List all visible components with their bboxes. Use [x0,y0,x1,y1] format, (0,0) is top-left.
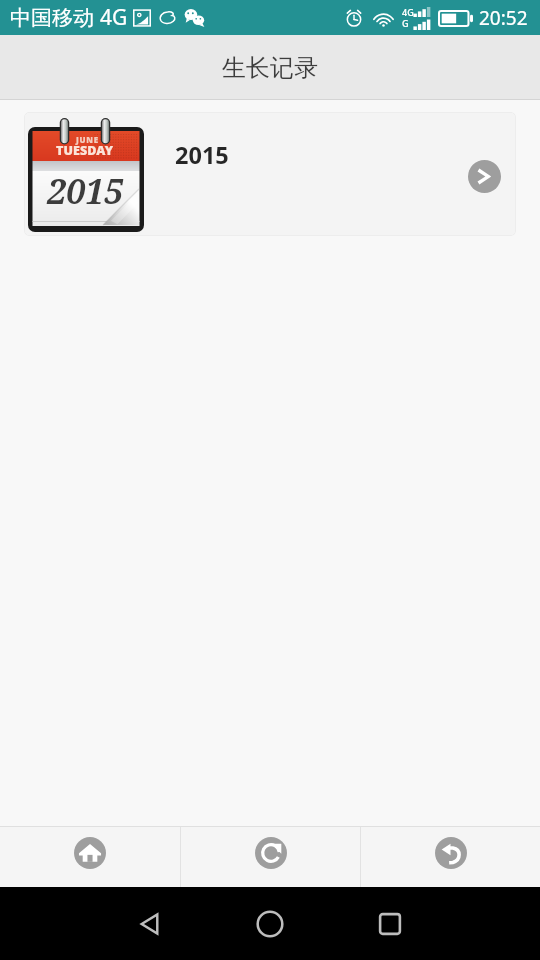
staticText: 中国移动 [10,5,94,31]
staticText: 2015 [175,139,229,171]
staticText: 4G [100,3,128,32]
button[interactable]: JUNE [24,112,516,236]
button[interactable]: Refresh [181,827,360,887]
button[interactable]: Back [361,827,540,887]
button[interactable]: Home [0,827,180,887]
staticText: 4G [402,6,414,18]
button[interactable]: Back [126,900,174,948]
button[interactable]: Home [246,900,294,948]
staticText: TUESDAY [56,142,114,159]
staticText: G [402,17,409,29]
staticText: 生长记录 [222,53,318,83]
staticText: 20:52 [479,5,528,31]
staticText: JUNE [76,134,99,145]
button[interactable]: Recents [366,900,414,948]
staticText: 2015 [47,168,124,214]
